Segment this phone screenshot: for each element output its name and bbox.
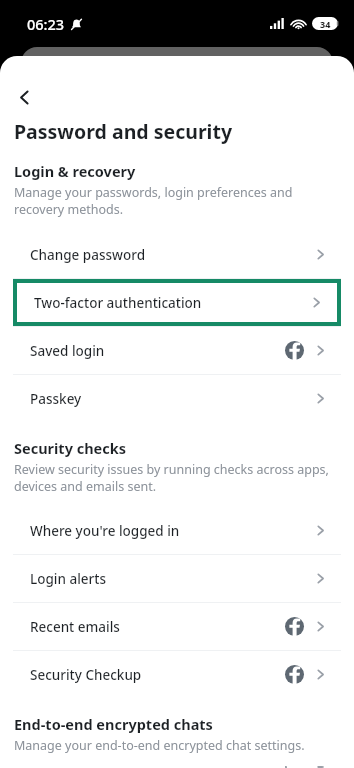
staticText: Manage your passwords, login preferences… bbox=[14, 184, 340, 218]
staticText: Manage your end-to-end encrypted chat se… bbox=[14, 737, 305, 754]
button[interactable]: Where you're logged in bbox=[13, 507, 341, 554]
button[interactable]: Change password bbox=[13, 231, 341, 278]
button[interactable]: Security alerts bbox=[13, 766, 341, 768]
staticText: 06:23 bbox=[27, 14, 65, 34]
staticText: Login & recovery bbox=[14, 161, 136, 181]
button[interactable]: Recent emails bbox=[13, 603, 341, 650]
button[interactable]: Login alerts bbox=[13, 555, 341, 602]
button[interactable]: Back bbox=[4, 77, 44, 117]
staticText: Review security issues by running checks… bbox=[14, 461, 340, 495]
staticText: Where you're logged in bbox=[30, 522, 314, 540]
button[interactable]: Saved login bbox=[13, 327, 341, 374]
staticText: End-to-end encrypted chats bbox=[14, 714, 213, 734]
staticText: Security Checkup bbox=[30, 666, 285, 684]
staticText: Change password bbox=[30, 246, 314, 264]
staticText: Login alerts bbox=[30, 570, 314, 588]
staticText: Password and security bbox=[14, 118, 233, 145]
staticText: Two-factor authentication bbox=[34, 294, 310, 312]
staticText: Passkey bbox=[30, 390, 314, 408]
button[interactable]: Two-factor authentication bbox=[17, 283, 337, 322]
staticText: Recent emails bbox=[30, 618, 285, 636]
button[interactable]: Security Checkup bbox=[13, 651, 341, 698]
staticText: 34 bbox=[320, 18, 331, 30]
staticText: Saved login bbox=[30, 342, 285, 360]
staticText: Security checks bbox=[14, 438, 127, 458]
button[interactable]: Passkey bbox=[13, 375, 341, 422]
